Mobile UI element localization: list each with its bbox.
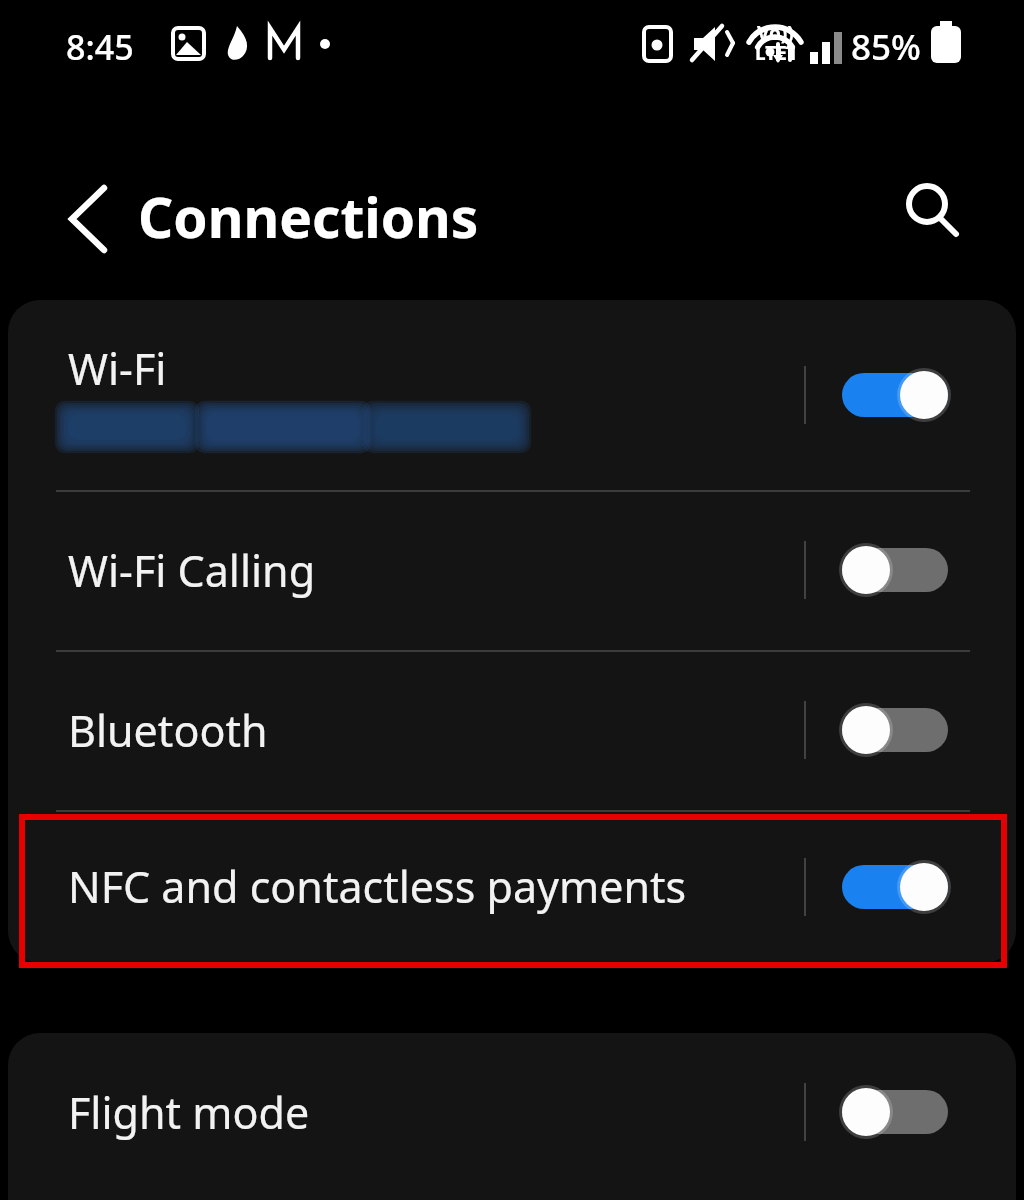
staticText: NFC and contactless payments [68,857,687,916]
staticText: 85% [851,23,921,71]
button[interactable]: Back [50,168,130,248]
button[interactable]: Toggle off [842,1088,948,1136]
staticText: LTE1 [755,40,798,66]
staticText: Vo)) [757,20,794,46]
button[interactable]: Search [888,166,972,250]
button[interactable]: Toggle off [842,546,948,594]
button[interactable]: Flight mode [8,1033,1016,1191]
staticText: Wi-Fi [68,339,167,398]
button[interactable]: Toggle off [842,706,948,754]
button[interactable]: Toggle on [842,863,948,911]
button[interactable]: NFC and contactless payments [8,810,1016,963]
staticText: Flight mode [68,1083,310,1142]
button[interactable]: Bluetooth [8,650,1016,810]
button[interactable]: Wi-Fi Calling [8,490,1016,650]
button[interactable]: Wi-Fi [8,300,1016,490]
staticText: Bluetooth [68,701,268,760]
staticText: Wi-Fi Calling [68,541,316,600]
button[interactable]: Toggle on [842,371,948,419]
staticText: Connections [138,179,479,254]
staticText: 8:45 [66,24,134,70]
